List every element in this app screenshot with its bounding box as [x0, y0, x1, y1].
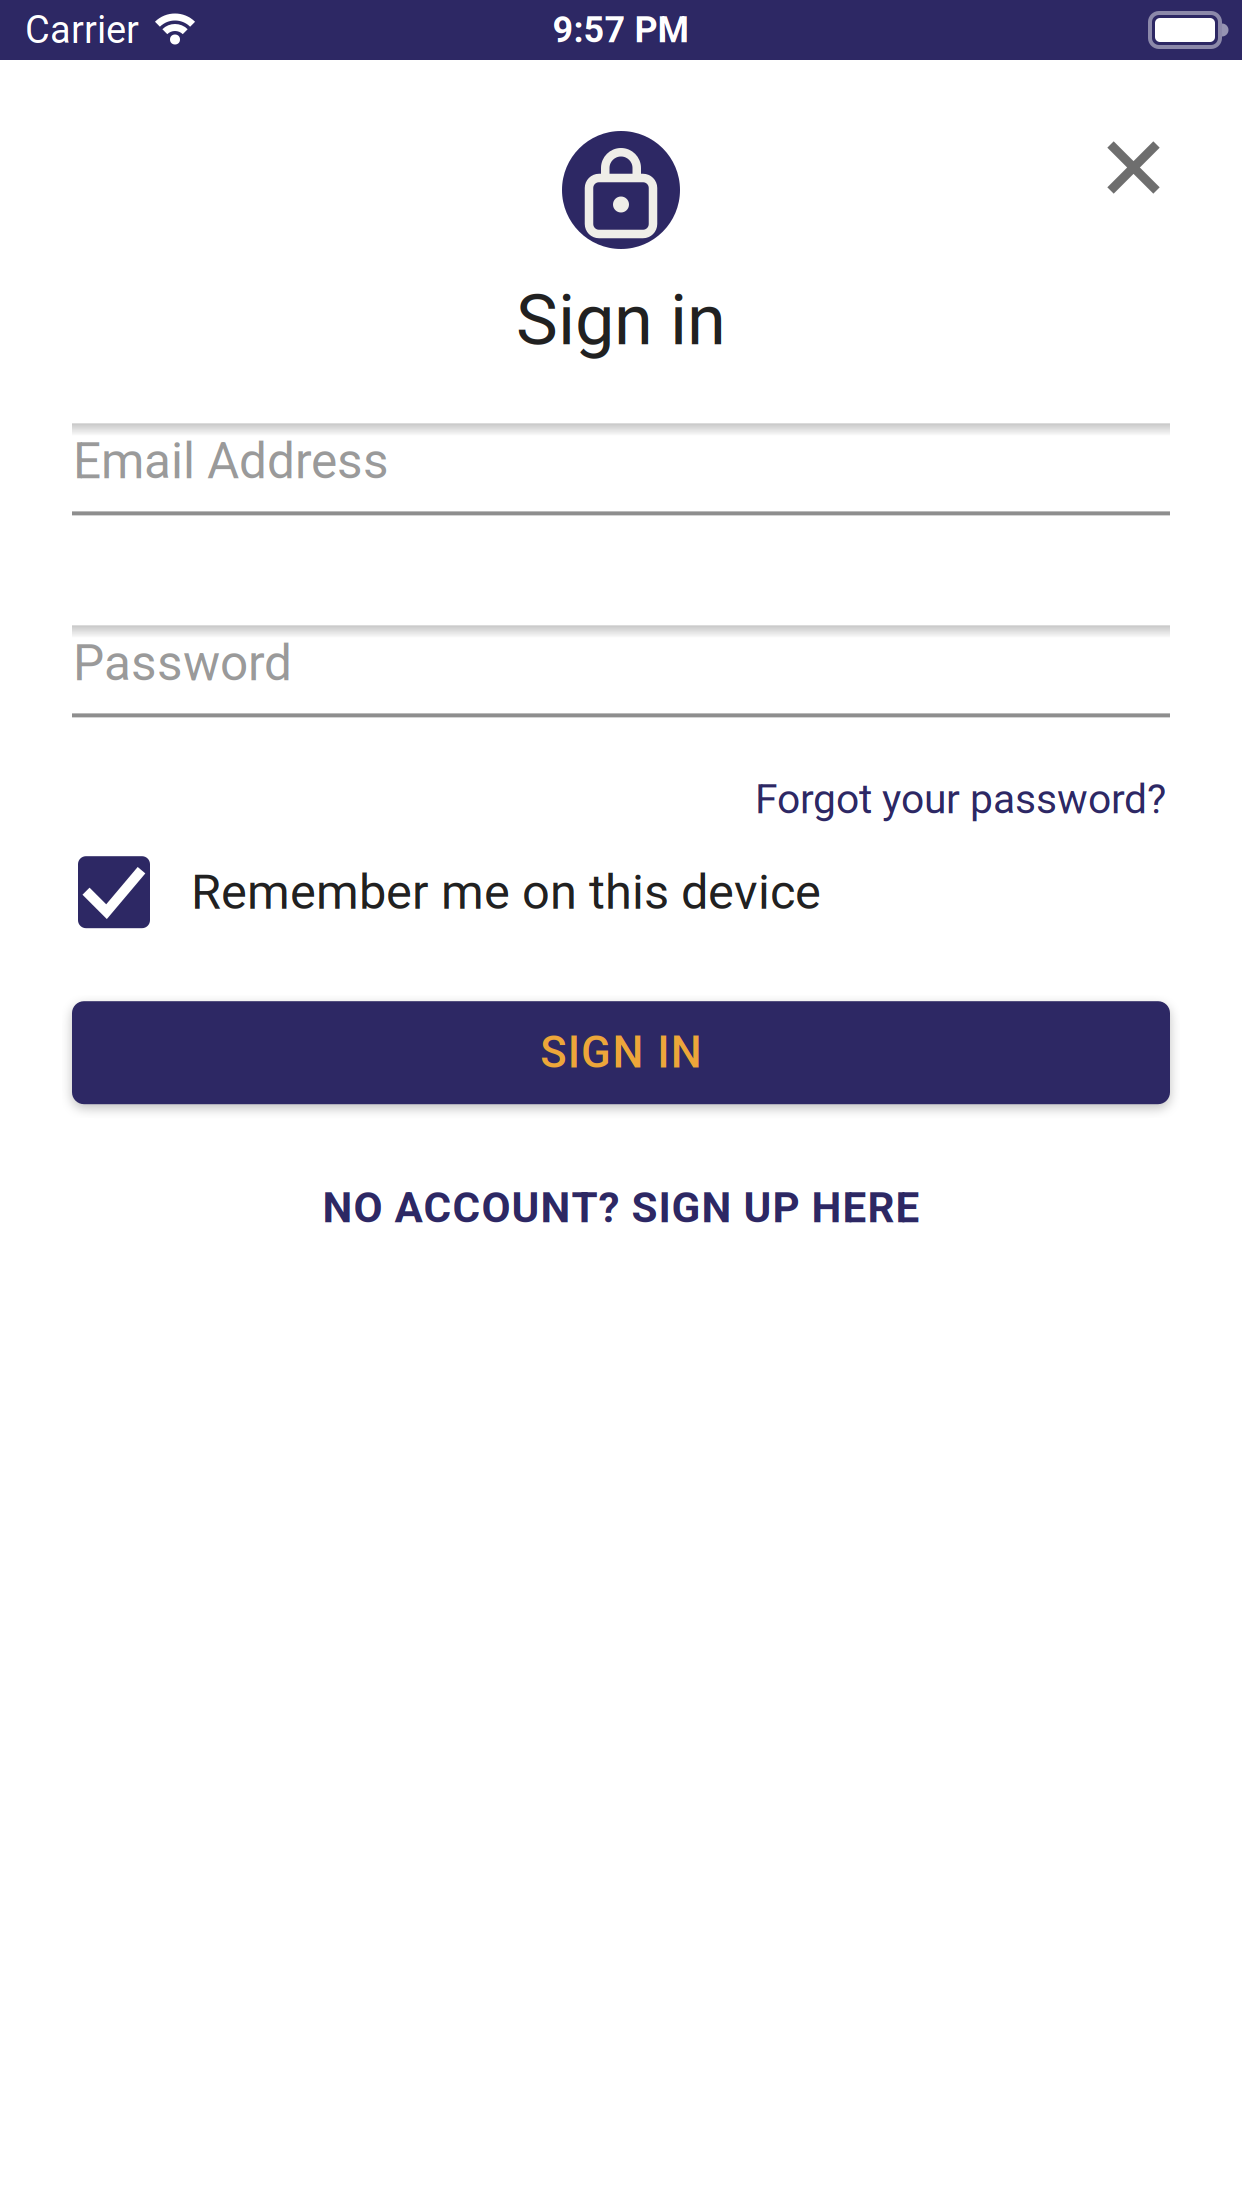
staticText: O: [481, 1183, 510, 1233]
staticText: U: [743, 1183, 771, 1233]
staticText: G: [671, 1183, 700, 1233]
staticText: T: [571, 1183, 597, 1233]
button[interactable]: Forgot your password?: [755, 775, 1166, 823]
staticText: N: [701, 1183, 731, 1233]
staticText: O: [353, 1183, 382, 1233]
staticText: N: [322, 1183, 352, 1233]
staticText: P: [772, 1183, 799, 1233]
staticText: G: [581, 1027, 611, 1078]
staticText: Forgot your password?: [755, 775, 1166, 823]
staticText: C: [452, 1183, 480, 1233]
staticText: I: [658, 1183, 670, 1233]
staticText: Email Address: [73, 432, 389, 490]
staticText: I: [657, 1027, 669, 1078]
staticText: E: [842, 1183, 866, 1233]
staticText: H: [811, 1183, 841, 1233]
staticText: C: [423, 1183, 451, 1233]
staticText: U: [511, 1183, 539, 1233]
staticText: N: [671, 1027, 702, 1078]
button[interactable]: S: [72, 1001, 1170, 1104]
staticText: N: [540, 1183, 570, 1233]
staticText: 9:57 PM: [552, 9, 689, 51]
staticText: A: [394, 1183, 422, 1233]
staticText: ?: [598, 1183, 619, 1233]
staticText: Remember me on this device: [191, 864, 821, 921]
staticText: R: [867, 1183, 894, 1233]
staticText: Password: [73, 634, 292, 692]
staticText: S: [540, 1027, 566, 1078]
staticText: N: [612, 1027, 643, 1078]
button[interactable]: Remember me on this device: [0, 856, 1242, 928]
staticText: S: [631, 1183, 657, 1233]
staticText: I: [568, 1027, 580, 1078]
button[interactable]: N: [322, 1183, 919, 1233]
staticText: E: [895, 1183, 919, 1233]
staticText: Sign in: [516, 279, 726, 361]
staticText: Carrier: [25, 8, 139, 52]
button[interactable]: Close: [1106, 140, 1161, 195]
